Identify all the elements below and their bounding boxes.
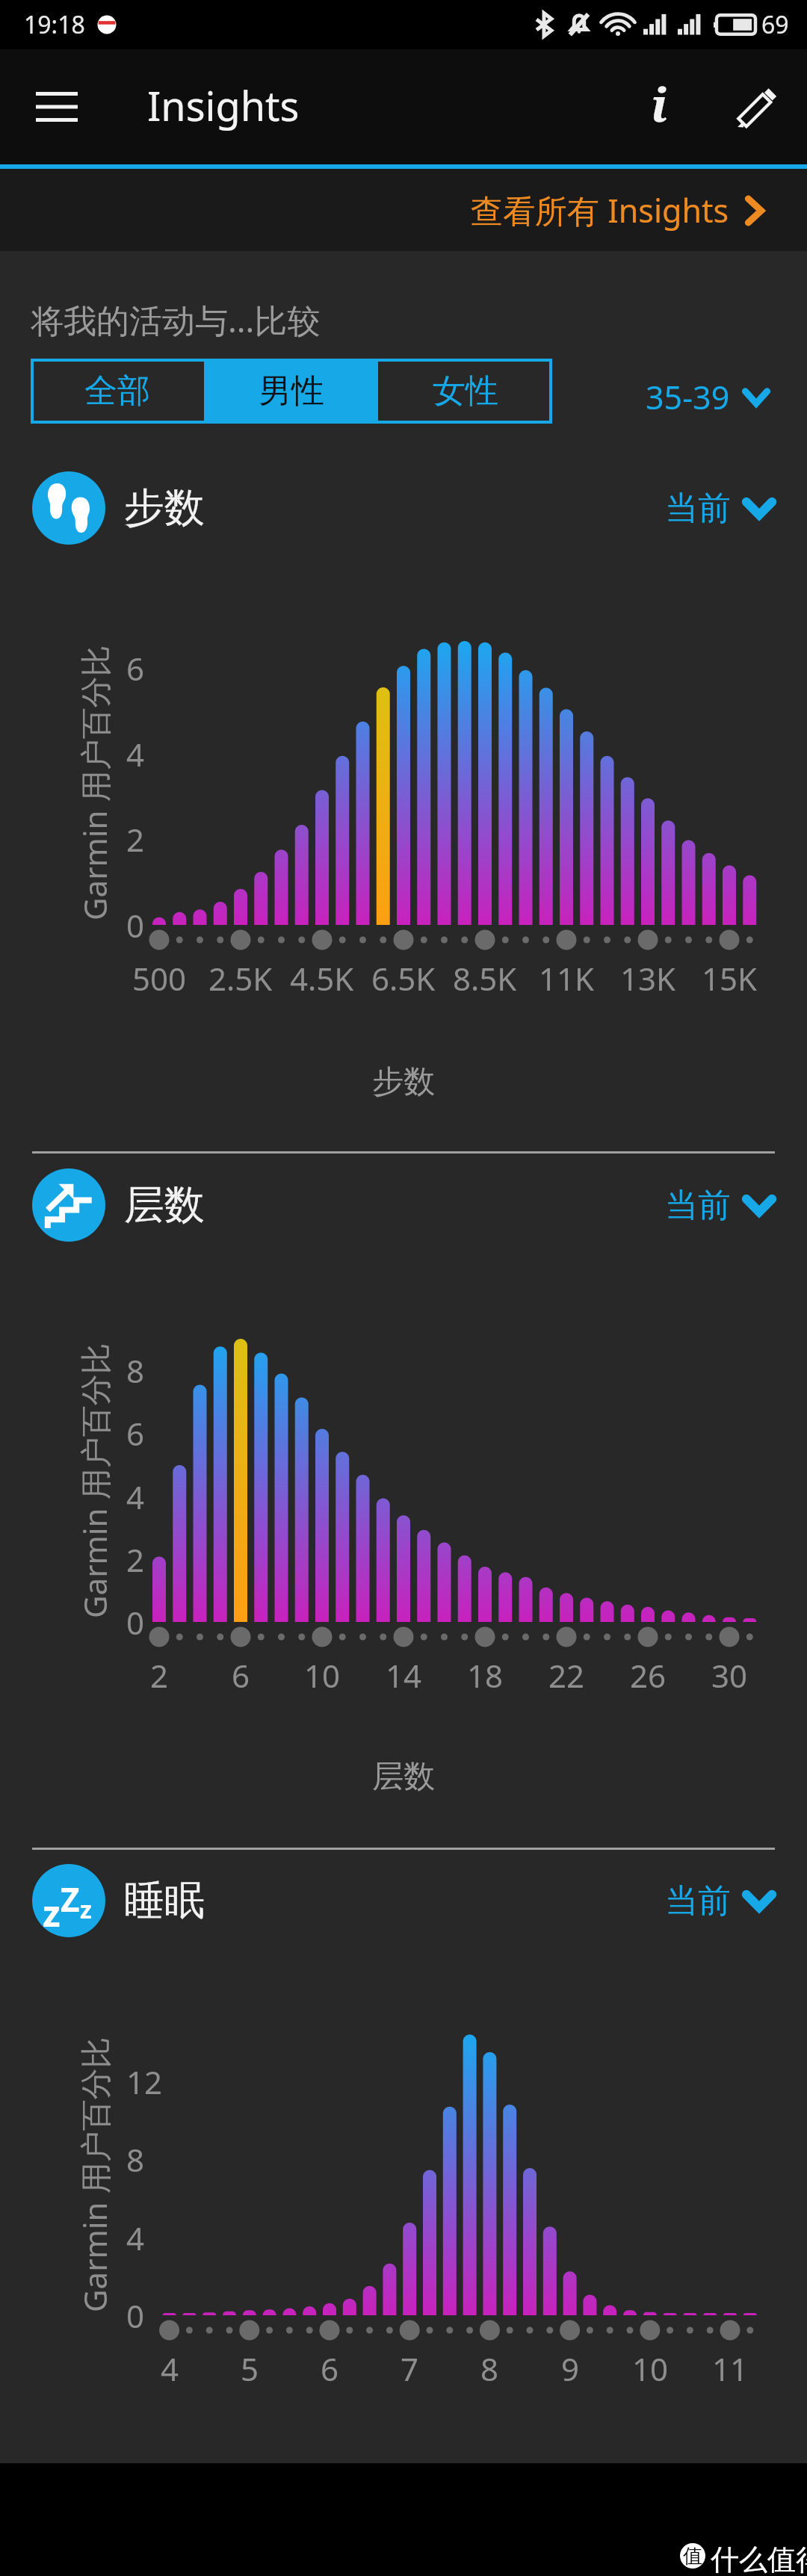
staticText: 4	[126, 733, 145, 775]
staticText: 将我的活动与...比较	[31, 297, 321, 342]
staticText: 8	[126, 1349, 145, 1392]
staticText: 8.5K	[453, 957, 517, 1000]
staticText: 11K	[539, 957, 595, 1000]
staticText: 6.5K	[371, 957, 436, 1000]
staticText: 7	[401, 2347, 419, 2390]
staticText: 0	[126, 2294, 145, 2337]
staticText: Insights	[147, 78, 300, 133]
staticText: 2	[126, 1538, 145, 1581]
button[interactable]: 全部	[31, 359, 204, 424]
staticText: 值	[683, 2544, 702, 2569]
staticText: 10	[304, 1654, 341, 1697]
staticText: Garmin 用户百分比	[73, 1343, 116, 1618]
staticText: 4	[126, 2217, 145, 2259]
staticText: 6	[126, 1412, 145, 1455]
button[interactable]: 35-39	[641, 371, 773, 424]
staticText: Z	[61, 1877, 80, 1919]
staticText: 全部	[84, 371, 150, 412]
staticText: 30	[711, 1654, 748, 1697]
staticText: 14	[386, 1654, 422, 1697]
staticText: 睡眠	[124, 1875, 205, 1926]
staticText: 4	[126, 1476, 145, 1518]
staticText: 0	[126, 1601, 145, 1644]
staticText: 22	[548, 1654, 585, 1697]
staticText: 8	[480, 2347, 499, 2390]
staticText: 11	[712, 2347, 749, 2390]
staticText: 女性	[433, 371, 498, 412]
staticText: 当前	[665, 1880, 731, 1922]
staticText: 2.5K	[208, 957, 273, 1000]
staticText: 35-39	[646, 375, 730, 419]
staticText: 0	[126, 904, 145, 947]
staticText: 500	[132, 957, 187, 1000]
staticText: 15K	[702, 957, 758, 1000]
staticText: 9	[561, 2347, 580, 2390]
staticText: 步数	[124, 483, 205, 533]
staticText: 5	[241, 2347, 259, 2390]
staticText: 19:18	[24, 8, 85, 41]
button[interactable]: 查看所有 Insights	[466, 181, 768, 240]
button[interactable]: Open navigation menu	[19, 69, 94, 144]
staticText: 2	[126, 818, 145, 861]
staticText: Garmin 用户百分比	[73, 645, 116, 920]
staticText: 层数	[372, 1757, 435, 1797]
staticText: 4	[161, 2347, 179, 2390]
staticText: 6	[126, 647, 145, 690]
button[interactable]: 层数	[0, 1160, 807, 1250]
staticText: 2	[150, 1654, 169, 1697]
button[interactable]: z	[0, 1856, 807, 1945]
staticText: 4.5K	[290, 957, 354, 1000]
staticText: 查看所有 Insights	[471, 188, 729, 232]
staticText: 10	[632, 2347, 669, 2390]
button[interactable]: Information	[622, 69, 696, 144]
button[interactable]: 女性	[378, 359, 552, 424]
staticText: 步数	[372, 1062, 435, 1102]
button[interactable]: 男性	[204, 359, 378, 424]
button[interactable]: 步数	[0, 463, 807, 553]
staticText: 69	[761, 8, 789, 41]
staticText: 什么值得买	[711, 2542, 807, 2576]
staticText: 当前	[665, 488, 731, 529]
staticText: z	[80, 1893, 92, 1926]
staticText: 6	[232, 1654, 250, 1697]
staticText: 8	[126, 2138, 145, 2181]
staticText: 层数	[124, 1180, 205, 1230]
staticText: 18	[467, 1654, 504, 1697]
staticText: i	[651, 72, 667, 135]
staticText: 当前	[665, 1185, 731, 1226]
staticText: Garmin 用户百分比	[73, 2037, 116, 2312]
staticText: 12	[126, 2061, 163, 2103]
staticText: 13K	[620, 957, 676, 1000]
staticText: 26	[630, 1654, 667, 1697]
staticText: z	[43, 1889, 61, 1931]
button[interactable]: Edit	[720, 69, 795, 144]
staticText: 男性	[259, 371, 324, 412]
staticText: 6	[321, 2347, 339, 2390]
